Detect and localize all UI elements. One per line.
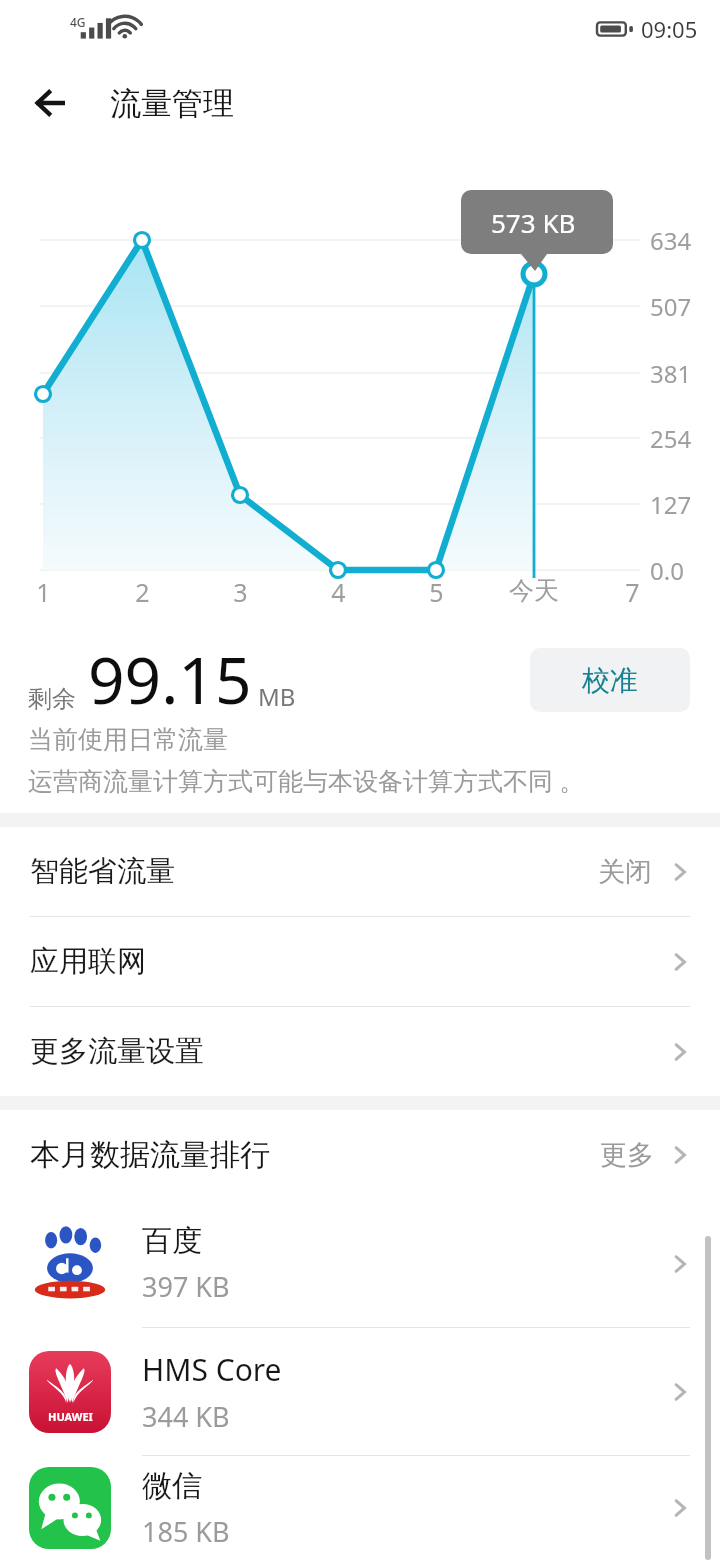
staticText: 更多流量设置 — [30, 1033, 204, 1070]
staticText: 99.15 — [88, 636, 252, 723]
staticText: 381 — [650, 357, 692, 390]
staticText: 397 KB — [142, 1268, 230, 1305]
staticText: 634 — [650, 224, 692, 257]
staticText: 254 — [650, 422, 692, 455]
staticText: 百度 — [142, 1222, 202, 1260]
staticText: 1 — [36, 575, 51, 609]
staticText: 校准 — [582, 663, 638, 698]
staticText: 今天 — [509, 575, 559, 606]
staticText: 09:05 — [641, 14, 698, 44]
staticText: 507 — [650, 290, 692, 323]
button[interactable]: 本月数据流量排行 — [0, 1110, 720, 1200]
button[interactable]: Back — [18, 69, 86, 137]
staticText: 3 — [233, 575, 248, 609]
staticText: 127 — [650, 488, 692, 521]
button[interactable]: HUAWEI — [0, 1328, 720, 1455]
staticText: 更多 — [600, 1138, 654, 1172]
staticText: 344 KB — [142, 1398, 230, 1435]
staticText: 4G — [70, 14, 86, 30]
staticText: 智能省流量 — [30, 853, 175, 890]
staticText: 本月数据流量排行 — [30, 1136, 270, 1174]
button[interactable]: 更多流量设置 — [0, 1007, 720, 1096]
staticText: 5 — [429, 575, 444, 609]
staticText: 7 — [625, 575, 640, 609]
staticText: 2 — [135, 575, 150, 609]
staticText: 运营商流量计算方式可能与本设备计算方式不同 。 — [28, 763, 585, 797]
staticText: 573 KB — [491, 205, 576, 240]
staticText: 关闭 — [598, 855, 652, 889]
staticText: 4 — [331, 575, 346, 609]
staticText: 剩余 — [28, 684, 76, 714]
staticText: HMS Core — [142, 1349, 282, 1390]
button[interactable]: 智能省流量 — [0, 827, 720, 916]
staticText: 当前使用日常流量 — [28, 724, 228, 755]
staticText: 185 KB — [142, 1513, 230, 1550]
button[interactable]: 应用联网 — [0, 917, 720, 1006]
button[interactable]: 百度 — [0, 1200, 720, 1327]
staticText: MB — [258, 680, 296, 713]
staticText: 0.0 — [650, 554, 684, 587]
button[interactable]: 校准 — [530, 648, 690, 712]
staticText: 微信 — [142, 1467, 202, 1505]
staticText: HUAWEI — [48, 1409, 93, 1424]
button[interactable]: 微信 — [0, 1456, 720, 1560]
staticText: 应用联网 — [30, 943, 146, 980]
staticText: 流量管理 — [110, 84, 234, 123]
